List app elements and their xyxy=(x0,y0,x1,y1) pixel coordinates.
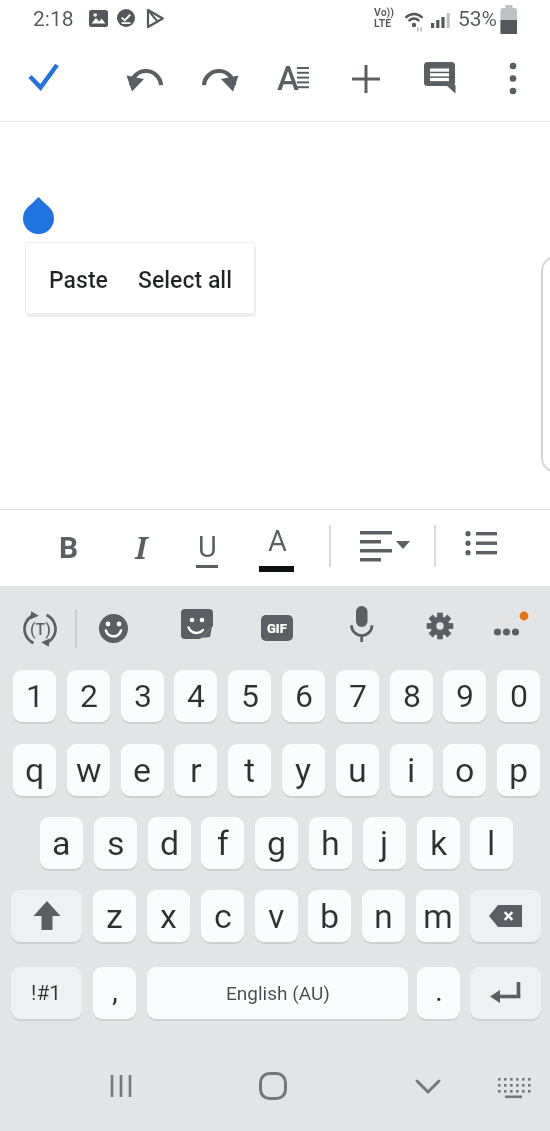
staticText: r xyxy=(190,750,202,790)
button[interactable]: 2 xyxy=(67,670,110,722)
button[interactable]: w xyxy=(67,744,110,796)
staticText: v xyxy=(268,896,285,936)
button[interactable]: t xyxy=(228,744,271,796)
button[interactable]: !#1 xyxy=(11,967,82,1019)
staticText: 0 xyxy=(510,677,528,715)
staticText: q xyxy=(25,750,45,790)
button[interactable] xyxy=(180,606,225,651)
staticText: 53% xyxy=(458,7,497,32)
button[interactable] xyxy=(91,606,136,651)
button[interactable]: r xyxy=(174,744,217,796)
button[interactable]: v xyxy=(255,890,298,942)
button[interactable]: c xyxy=(201,890,244,942)
button[interactable] xyxy=(420,604,462,648)
staticText: j xyxy=(380,823,389,863)
button[interactable] xyxy=(404,1062,452,1110)
staticText: 2 xyxy=(80,677,98,715)
button[interactable] xyxy=(19,55,67,103)
button[interactable]: A xyxy=(253,523,301,571)
button[interactable]: 0 xyxy=(497,670,540,722)
button[interactable]: e xyxy=(121,744,164,796)
button[interactable] xyxy=(23,197,54,235)
staticText: A xyxy=(277,59,299,98)
button[interactable]: GIF xyxy=(261,615,293,641)
staticText: w xyxy=(76,750,102,790)
button[interactable]: y xyxy=(282,744,325,796)
button[interactable]: 7 xyxy=(336,670,379,722)
button[interactable]: A xyxy=(269,55,317,103)
staticText: 1 xyxy=(26,677,44,715)
button[interactable] xyxy=(342,55,390,103)
button[interactable]: d xyxy=(148,817,191,869)
staticText: 5 xyxy=(241,677,259,715)
button[interactable] xyxy=(122,55,170,103)
staticText: Vo)) xyxy=(374,6,394,18)
staticText: B xyxy=(59,530,79,565)
button[interactable]: p xyxy=(497,744,540,796)
button[interactable]: b xyxy=(308,890,351,942)
staticText: t xyxy=(244,750,256,790)
button[interactable]: h xyxy=(309,817,352,869)
button[interactable]: j xyxy=(363,817,406,869)
button[interactable]: . xyxy=(417,967,460,1019)
button[interactable]: Select all xyxy=(138,267,233,294)
staticText: y xyxy=(295,750,312,790)
button[interactable] xyxy=(487,604,537,644)
button[interactable]: f xyxy=(201,817,244,869)
button[interactable]: o xyxy=(443,744,486,796)
button[interactable] xyxy=(249,1062,297,1110)
button[interactable] xyxy=(195,55,243,103)
button[interactable]: U xyxy=(183,523,231,571)
button[interactable]: g xyxy=(255,817,298,869)
button[interactable] xyxy=(11,890,82,942)
staticText: d xyxy=(160,823,180,863)
button[interactable]: 5 xyxy=(228,670,271,722)
staticText: a xyxy=(52,823,71,863)
button[interactable]: l xyxy=(470,817,513,869)
button[interactable]: 6 xyxy=(282,670,325,722)
button[interactable]: x xyxy=(147,890,190,942)
staticText: !#1 xyxy=(31,981,62,1006)
button[interactable] xyxy=(457,521,505,569)
button[interactable]: B xyxy=(45,523,93,571)
button[interactable]: English (AU) xyxy=(147,967,408,1019)
staticText: n xyxy=(374,896,393,936)
button[interactable]: i xyxy=(390,744,433,796)
button[interactable]: 8 xyxy=(390,670,433,722)
button[interactable]: k xyxy=(417,817,460,869)
button[interactable]: , xyxy=(93,967,136,1019)
staticText: h xyxy=(321,823,340,863)
staticText: (T) xyxy=(30,620,51,639)
staticText: 6 xyxy=(295,677,313,715)
button[interactable] xyxy=(416,55,464,103)
button[interactable]: 1 xyxy=(13,670,56,722)
button[interactable]: s xyxy=(94,817,137,869)
button[interactable] xyxy=(489,55,537,103)
button[interactable]: 3 xyxy=(121,670,164,722)
staticText: x xyxy=(160,896,177,936)
button[interactable] xyxy=(341,604,383,652)
button[interactable]: q xyxy=(13,744,56,796)
staticText: A xyxy=(268,524,287,558)
staticText: m xyxy=(423,896,453,936)
button[interactable]: a xyxy=(40,817,83,869)
button[interactable]: z xyxy=(93,890,136,942)
button[interactable] xyxy=(97,1062,145,1110)
button[interactable]: Paste xyxy=(49,267,108,294)
button[interactable]: n xyxy=(362,890,405,942)
button[interactable]: (T) xyxy=(22,611,58,647)
button[interactable] xyxy=(470,890,541,942)
button[interactable]: I xyxy=(117,523,165,571)
staticText: g xyxy=(267,823,287,863)
button[interactable] xyxy=(489,1062,537,1110)
button[interactable] xyxy=(470,967,541,1019)
button[interactable]: u xyxy=(336,744,379,796)
staticText: , xyxy=(112,973,118,1008)
staticText: LTE xyxy=(374,17,392,29)
button[interactable]: m xyxy=(416,890,459,942)
staticText: i xyxy=(407,750,416,790)
staticText: I xyxy=(135,527,148,568)
button[interactable]: 9 xyxy=(443,670,486,722)
button[interactable]: 4 xyxy=(174,670,217,722)
button[interactable] xyxy=(352,521,412,569)
